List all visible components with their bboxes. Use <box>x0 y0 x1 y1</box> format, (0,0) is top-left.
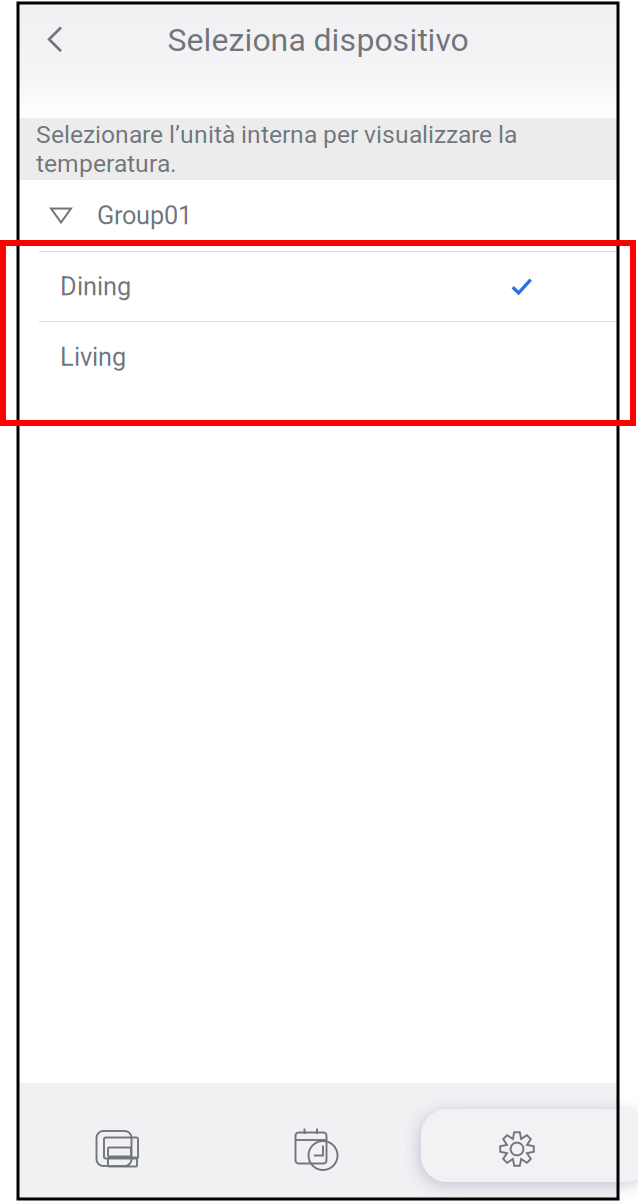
button[interactable]: Group01 <box>18 180 618 251</box>
button[interactable]: Schedule <box>217 1091 416 1202</box>
staticText: Selezionare l’unità interna per visualiz… <box>36 120 517 178</box>
button[interactable]: Settings <box>416 1091 618 1202</box>
staticText: Dining <box>60 272 131 301</box>
button[interactable]: Living <box>18 322 618 392</box>
button[interactable]: Back <box>18 3 92 76</box>
staticText: Group01 <box>97 201 192 230</box>
staticText: Seleziona dispositivo <box>167 21 468 59</box>
button[interactable]: Units <box>18 1091 217 1202</box>
staticText: Living <box>60 342 126 372</box>
button[interactable]: Dining <box>18 252 618 321</box>
